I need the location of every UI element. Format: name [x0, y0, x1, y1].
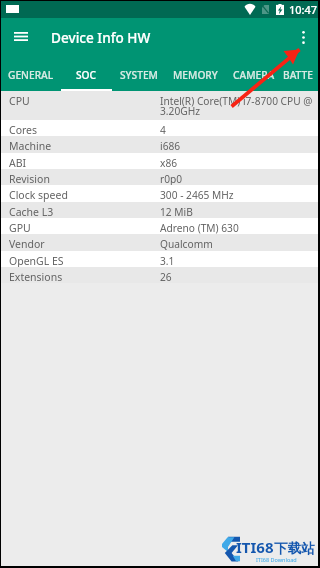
staticText: Qualcomm — [160, 237, 317, 251]
staticText: 10:47 — [289, 2, 318, 17]
staticText: Cache L3 — [9, 205, 160, 218]
staticText: Adreno (TM) 630 — [160, 221, 317, 234]
button[interactable]: More options — [288, 18, 318, 59]
staticText: Cores — [9, 123, 160, 136]
button[interactable]: ABI — [1, 153, 318, 169]
staticText: 3.1 — [160, 254, 317, 267]
button[interactable]: Machine — [1, 136, 318, 153]
staticText: OpenGL ES — [9, 254, 160, 267]
button[interactable]: MEMORY — [166, 59, 224, 91]
staticText: ABI — [9, 156, 160, 169]
staticText: Machine — [9, 139, 160, 153]
button[interactable]: SOC — [61, 59, 112, 91]
button[interactable]: Revision — [1, 169, 318, 185]
staticText: r0p0 — [160, 172, 317, 185]
staticText: ITI68 Download — [256, 556, 297, 563]
button[interactable]: Vendor — [1, 234, 318, 251]
staticText: Extensions — [9, 270, 160, 283]
button[interactable]: Extensions — [1, 267, 318, 283]
button[interactable]: CAMERA — [224, 59, 283, 91]
button[interactable]: GENERAL — [1, 59, 61, 91]
staticText: SOC — [76, 68, 97, 82]
button[interactable]: Clock speed — [1, 185, 318, 202]
staticText: x86 — [160, 156, 317, 169]
staticText: i686 — [160, 139, 317, 153]
staticText: Device Info HW — [51, 28, 151, 47]
button[interactable]: Cores — [1, 120, 318, 136]
button[interactable]: OpenGL ES — [1, 251, 318, 267]
staticText: GPU — [9, 221, 160, 234]
staticText: 4 — [160, 123, 317, 136]
staticText: 12 MiB — [160, 205, 317, 218]
staticText: CAMERA — [233, 68, 275, 82]
staticText: 26 — [160, 270, 317, 283]
staticText: MEMORY — [173, 68, 218, 82]
staticText: Vendor — [9, 237, 160, 251]
staticText: GENERAL — [8, 68, 54, 82]
button[interactable]: CPU — [1, 91, 318, 120]
button[interactable]: GPU — [1, 218, 318, 234]
staticText: SYSTEM — [120, 68, 158, 82]
staticText: CPU — [9, 94, 160, 108]
button[interactable]: BATTERY — [283, 59, 318, 91]
staticText: 下载站 — [274, 540, 315, 557]
button[interactable]: SYSTEM — [112, 59, 166, 91]
staticText: BATTERY — [283, 68, 318, 82]
staticText: 300 - 2465 MHz — [160, 188, 317, 202]
staticText: ITI68 — [236, 537, 274, 557]
staticText: Revision — [9, 172, 160, 185]
button[interactable]: Cache L3 — [1, 202, 318, 218]
staticText: Intel(R) Core(TM) i7-8700 CPU @ 3.20GHz — [160, 94, 317, 118]
staticText: Clock speed — [9, 188, 160, 202]
button[interactable]: Open navigation drawer — [1, 19, 41, 59]
